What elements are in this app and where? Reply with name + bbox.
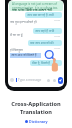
staticText: 10:24 bbox=[54, 46, 61, 49]
staticText: communication, it is a culture too. bbox=[12, 6, 59, 10]
staticText: मैं घर पर हूँ bbox=[10, 33, 23, 37]
staticText: Dictionary bbox=[29, 119, 48, 124]
staticText: क्या आप शाम को फ्री bbox=[30, 41, 54, 45]
staticText: 10:24 bbox=[54, 34, 61, 37]
button[interactable]: ठीक है, मिलते हैं bbox=[30, 60, 62, 66]
staticText: A language is not just a means of bbox=[12, 2, 58, 6]
staticText: हाँ बिलकुल bbox=[10, 48, 23, 52]
staticText: आज शाम को मिलते हैं bbox=[11, 53, 37, 57]
button[interactable]: क्या आप शाम को फ्री bbox=[28, 40, 62, 46]
button[interactable]: आप क्या कर रहे हैं अभी bbox=[25, 12, 62, 18]
button[interactable]: Camera bbox=[53, 79, 56, 82]
button[interactable]: A language is not just a means of bbox=[9, 1, 63, 11]
staticText: 10:24 bbox=[54, 18, 61, 21]
button[interactable]: Send bbox=[58, 77, 63, 84]
button[interactable]: आप कहाँ हैं अभी bbox=[33, 28, 62, 34]
staticText: जब तुम इतना सोचते हो bbox=[10, 20, 37, 24]
button[interactable]: आज शाम को मिलते हैं bbox=[10, 53, 41, 58]
staticText: Cross-Application bbox=[11, 100, 61, 108]
button[interactable]: Emoji bbox=[10, 78, 14, 82]
button[interactable]: Dictionary bbox=[25, 119, 48, 124]
staticText: Translation bbox=[20, 108, 52, 116]
staticText: एक भाषा सिर्फ एक साधन नहीं bbox=[12, 7, 53, 11]
button[interactable]: Translate selection bbox=[44, 49, 57, 62]
button[interactable]: Attach bbox=[47, 79, 50, 82]
staticText: ठीक है, मिलते हैं bbox=[32, 61, 51, 65]
staticText: आप कहाँ हैं अभी bbox=[35, 29, 55, 33]
staticText: आप क्या कर रहे हैं अभी bbox=[27, 13, 54, 17]
staticText: Type a message bbox=[18, 78, 42, 82]
